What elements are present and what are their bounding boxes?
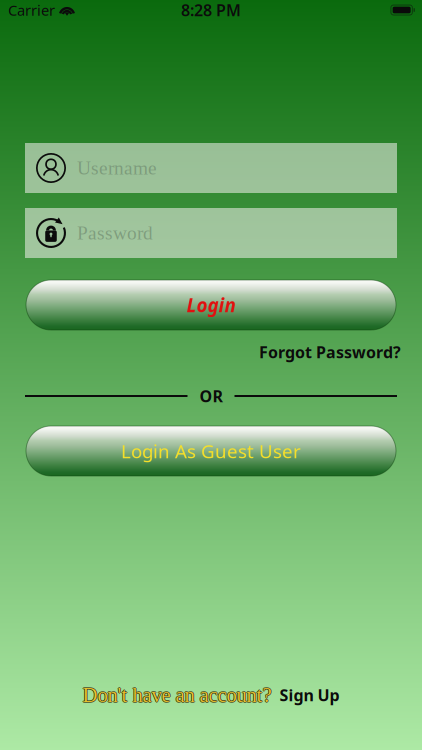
staticText: Don't have an account? [83,684,272,706]
staticText: Don't have an account? [82,684,271,707]
staticText: Don't have an account? [82,684,271,706]
staticText: Username [77,157,157,179]
button[interactable]: Forgot Password? [259,341,401,363]
button[interactable]: Password [25,208,397,258]
staticText: Don't have an account? [82,683,271,706]
staticText: Sign Up [279,684,339,706]
staticText: Carrier [8,0,55,20]
staticText: Don't have an account? [82,684,271,706]
staticText: OR [199,385,222,407]
staticText: 8:28 PM [181,0,241,21]
staticText: Login [186,293,235,317]
button[interactable]: Username [25,143,397,193]
staticText: Login As Guest User [121,439,301,463]
staticText: Password [77,222,153,244]
button[interactable]: Login As Guest User [26,426,396,476]
button[interactable]: Sign Up [279,684,339,706]
staticText: Forgot Password? [259,341,401,363]
button[interactable]: Login [26,280,396,330]
